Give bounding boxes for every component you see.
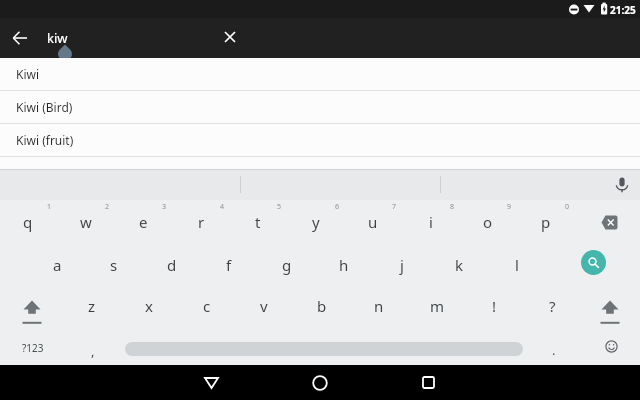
staticText: ?123 (22, 341, 44, 355)
staticText: t (255, 212, 261, 232)
staticText: . (552, 341, 556, 359)
button[interactable] (296, 365, 344, 400)
staticText: y (312, 212, 320, 232)
button[interactable]: b (294, 286, 350, 326)
staticText: i (429, 212, 433, 232)
button[interactable]: g (259, 245, 315, 285)
button[interactable]: r (173, 202, 229, 242)
button[interactable]: y (288, 202, 344, 242)
button[interactable]: x (121, 286, 177, 326)
staticText: , (91, 342, 95, 360)
button[interactable]: s (86, 245, 142, 285)
button[interactable]: Kiwi (fruit) (0, 124, 640, 156)
button[interactable]: p (518, 202, 574, 242)
staticText: 1 (47, 202, 52, 212)
staticText: f (226, 255, 232, 275)
button[interactable]: Kiwi (Bird) (0, 91, 640, 123)
button[interactable] (581, 250, 606, 275)
staticText: 3 (162, 202, 167, 212)
button[interactable]: z (64, 286, 120, 326)
button[interactable]: ?123 (1, 328, 65, 368)
staticText: ? (549, 296, 556, 316)
staticText: 2 (105, 202, 110, 212)
staticText: l (515, 255, 519, 275)
button[interactable]: a (29, 245, 85, 285)
staticText: Kiwi (16, 66, 40, 82)
staticText: q (23, 212, 33, 232)
button[interactable]: j (374, 245, 430, 285)
button[interactable] (584, 328, 638, 365)
staticText: o (483, 212, 493, 232)
staticText: g (282, 255, 292, 275)
staticText: Kiwi (fruit) (16, 132, 74, 148)
button[interactable] (4, 22, 36, 54)
button[interactable] (187, 365, 235, 400)
staticText: 8 (450, 202, 455, 212)
button[interactable]: e (115, 202, 171, 242)
staticText: m (430, 296, 445, 316)
staticText: p (541, 212, 551, 232)
staticText: v (260, 296, 268, 316)
staticText: r (198, 212, 205, 232)
staticText: s (110, 255, 118, 275)
staticText: d (167, 255, 177, 275)
staticText: 9 (507, 202, 512, 212)
button[interactable]: w (58, 202, 114, 242)
button[interactable]: , (67, 331, 119, 371)
staticText: ! (492, 296, 497, 316)
button[interactable]: ? (524, 286, 580, 326)
staticText: 0 (565, 202, 570, 212)
button[interactable] (580, 285, 640, 327)
staticText: b (317, 296, 327, 316)
staticText: kiw (47, 29, 68, 47)
button[interactable]: Kiwi (0, 58, 640, 90)
button[interactable]: . (528, 330, 580, 370)
button[interactable]: l (489, 245, 545, 285)
button[interactable]: k (431, 245, 487, 285)
staticText: e (139, 212, 148, 232)
staticText: j (400, 255, 404, 275)
button[interactable] (580, 202, 638, 242)
button[interactable]: h (316, 245, 372, 285)
button[interactable]: n (351, 286, 407, 326)
button[interactable]: t (230, 202, 286, 242)
staticText: h (339, 255, 349, 275)
button[interactable]: q (0, 202, 56, 242)
button[interactable] (404, 365, 452, 400)
staticText: 7 (392, 202, 397, 212)
button[interactable]: v (236, 286, 292, 326)
button[interactable]: i (403, 202, 459, 242)
staticText: 21:25 (610, 3, 636, 17)
button[interactable] (606, 170, 638, 199)
staticText: n (374, 296, 384, 316)
button[interactable] (214, 21, 246, 53)
button[interactable]: m (409, 286, 465, 326)
staticText: a (53, 255, 62, 275)
button[interactable]: f (201, 245, 257, 285)
button[interactable]: c (179, 286, 235, 326)
button[interactable]: u (345, 202, 401, 242)
staticText: 5 (277, 202, 282, 212)
button[interactable]: ! (466, 286, 522, 326)
button[interactable]: d (144, 245, 200, 285)
button[interactable] (2, 285, 62, 327)
button[interactable]: o (460, 202, 516, 242)
staticText: Kiwi (Bird) (16, 99, 73, 115)
staticText: c (203, 296, 211, 316)
staticText: k (455, 255, 464, 275)
staticText: x (145, 296, 153, 316)
staticText: w (80, 212, 92, 232)
staticText: z (88, 296, 96, 316)
staticText: 4 (220, 202, 225, 212)
staticText: 6 (335, 202, 340, 212)
staticText: u (368, 212, 378, 232)
